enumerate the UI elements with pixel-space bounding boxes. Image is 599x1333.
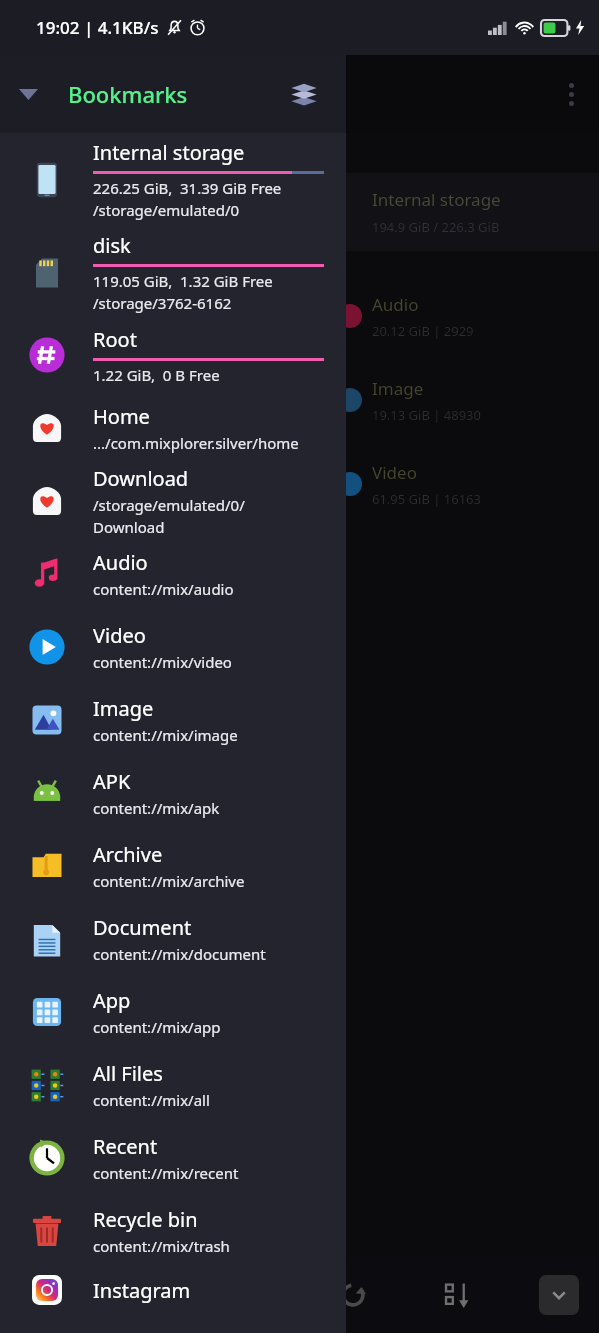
button[interactable]: Expand [539, 1275, 579, 1315]
staticText: Image [372, 377, 424, 400]
staticText: All Files [93, 1060, 163, 1087]
button[interactable]: All Files [0, 1048, 346, 1121]
staticText: 20.12 GiB | 2929 [372, 322, 474, 340]
staticText: Audio [372, 293, 419, 316]
button[interactable]: Download [0, 464, 346, 537]
button[interactable]: Bookmarks [68, 79, 188, 109]
staticText: content://mix/audio [93, 579, 234, 599]
button[interactable]: Collapse [10, 76, 46, 112]
button[interactable]: Root [0, 319, 346, 391]
button[interactable]: Instagram [0, 1267, 346, 1313]
button[interactable]: Audio [0, 285, 599, 347]
staticText: 19.13 GiB | 48930 [372, 406, 481, 424]
button[interactable]: Image [0, 683, 346, 756]
button[interactable]: Refresh [330, 1272, 376, 1318]
button[interactable]: Sort [435, 1272, 481, 1318]
button[interactable]: Video [0, 610, 346, 683]
staticText: content://mix/archive [93, 871, 245, 891]
staticText: content://mix/trash [93, 1236, 230, 1256]
staticText: content://mix/apk [93, 798, 220, 818]
staticText: content://mix/recent [93, 1163, 239, 1183]
staticText: content://mix/app [93, 1017, 221, 1037]
button[interactable]: Internal storage [0, 133, 346, 226]
staticText: 119.05 GiB, 1.32 GiB Free [93, 271, 273, 291]
staticText: /storage/emulated/0 [93, 200, 240, 220]
staticText: 226.25 GiB, 31.39 GiB Free [93, 178, 282, 198]
staticText: Audio [93, 549, 148, 576]
staticText: content://mix/video [93, 652, 232, 672]
button[interactable]: Audio [0, 537, 346, 610]
staticText: content://mix/document [93, 944, 266, 964]
staticText: Internal storage [372, 188, 501, 211]
staticText: Image [93, 695, 154, 722]
staticText: Download [93, 517, 165, 537]
button[interactable]: Video [0, 453, 599, 515]
staticText: Recycle bin [93, 1206, 198, 1233]
staticText: 1.22 GiB, 0 B Free [93, 365, 220, 385]
button[interactable]: Layers [282, 72, 326, 116]
staticText: Video [372, 461, 417, 484]
staticText: .../com.mixplorer.silver/home [93, 433, 299, 453]
staticText: 61.95 GiB | 16163 [372, 490, 481, 508]
staticText: disk [93, 232, 131, 259]
staticText: Home [93, 403, 150, 430]
button[interactable]: Recent [0, 1121, 346, 1194]
button[interactable]: Recycle bin [0, 1194, 346, 1267]
staticText: Instagram [93, 1277, 191, 1304]
staticText: content://mix/image [93, 725, 238, 745]
button[interactable]: Home [0, 391, 346, 464]
button[interactable]: Image [0, 369, 599, 431]
staticText: /storage/3762-6162 [93, 293, 232, 313]
staticText: Root [93, 326, 137, 353]
button[interactable]: APK [0, 756, 346, 829]
staticText: APK [93, 768, 131, 795]
staticText: Download [93, 465, 189, 492]
staticText: content://mix/all [93, 1090, 210, 1110]
staticText: Internal storage [93, 139, 245, 166]
staticText: Archive [93, 841, 163, 868]
staticText: App [93, 987, 131, 1014]
staticText: Video [93, 622, 146, 649]
staticText: 194.9 GiB / 226.3 GiB [372, 218, 500, 236]
button[interactable]: Document [0, 902, 346, 975]
staticText: /storage/emulated/0/ [93, 495, 245, 515]
button[interactable]: Archive [0, 829, 346, 902]
staticText: Recent [93, 1133, 158, 1160]
staticText: Document [93, 914, 192, 941]
button[interactable]: disk [0, 226, 346, 319]
staticText: 19:02 | 4.1KB/s [36, 16, 159, 39]
button[interactable]: App [0, 975, 346, 1048]
